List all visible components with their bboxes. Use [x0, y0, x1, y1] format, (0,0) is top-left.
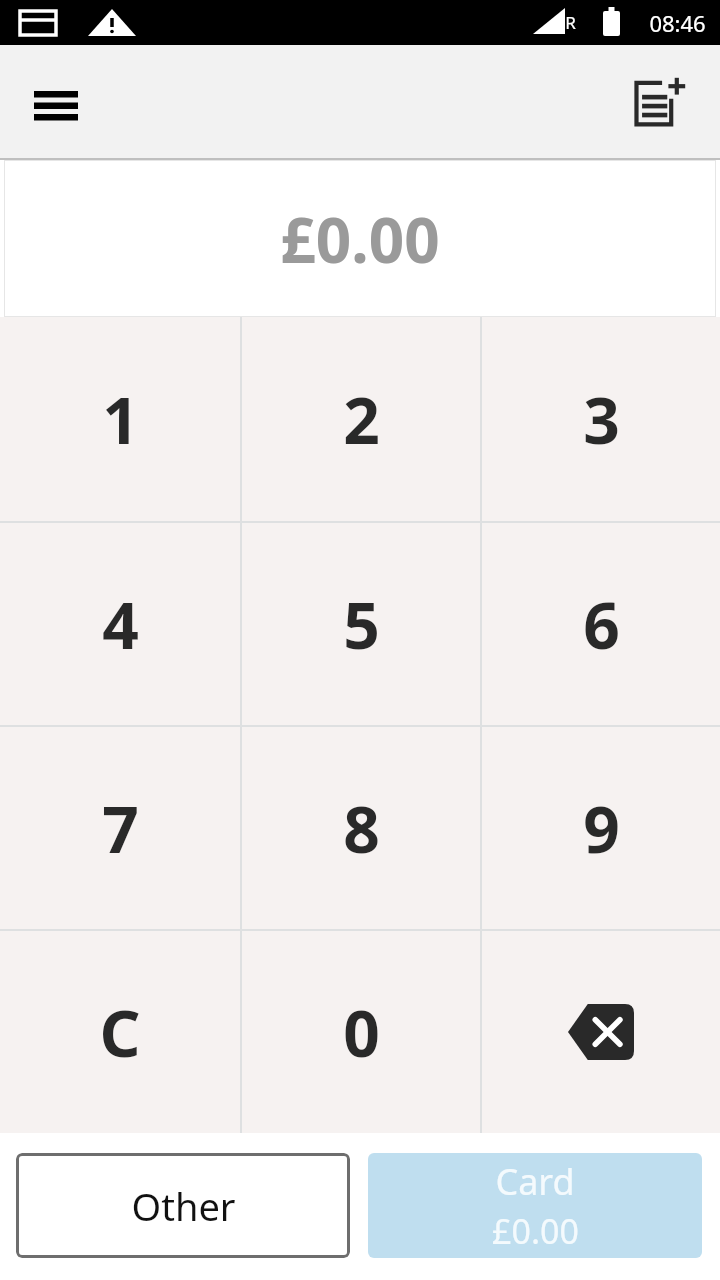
button[interactable]: 4	[0, 523, 240, 725]
staticText: 0	[343, 989, 380, 1076]
staticText: £0.00	[280, 197, 440, 281]
staticText: 5	[343, 581, 380, 668]
button[interactable]: 3	[482, 317, 720, 521]
staticText: 7	[102, 785, 139, 872]
staticText: Card	[495, 1157, 575, 1206]
staticText: 3	[583, 376, 620, 463]
staticText: 9	[583, 785, 620, 872]
button[interactable]: 0	[242, 931, 480, 1133]
staticText: 6	[583, 581, 620, 668]
button[interactable]: 1	[0, 317, 240, 521]
staticText: 2	[343, 376, 380, 463]
staticText: £0.00	[492, 1208, 579, 1254]
button[interactable]: 5	[242, 523, 480, 725]
button[interactable]: 6	[482, 523, 720, 725]
staticText: C	[99, 989, 141, 1076]
button[interactable]: 9	[482, 727, 720, 929]
staticText: 1	[102, 376, 139, 463]
button[interactable]: £0.00	[4, 160, 716, 317]
staticText: 08:46	[649, 8, 706, 38]
staticText: R	[565, 11, 576, 34]
staticText: 8	[343, 785, 380, 872]
button[interactable]: Card	[368, 1153, 702, 1258]
button[interactable]: Menu	[12, 59, 100, 147]
button[interactable]: 7	[0, 727, 240, 929]
button[interactable]: Add note	[616, 59, 704, 147]
button[interactable]: C	[0, 931, 240, 1133]
button[interactable]: 2	[242, 317, 480, 521]
button[interactable]: Backspace	[482, 931, 720, 1133]
staticText: Other	[131, 1180, 236, 1232]
button[interactable]: Other	[16, 1153, 350, 1258]
staticText: 4	[102, 581, 139, 668]
button[interactable]: 8	[242, 727, 480, 929]
